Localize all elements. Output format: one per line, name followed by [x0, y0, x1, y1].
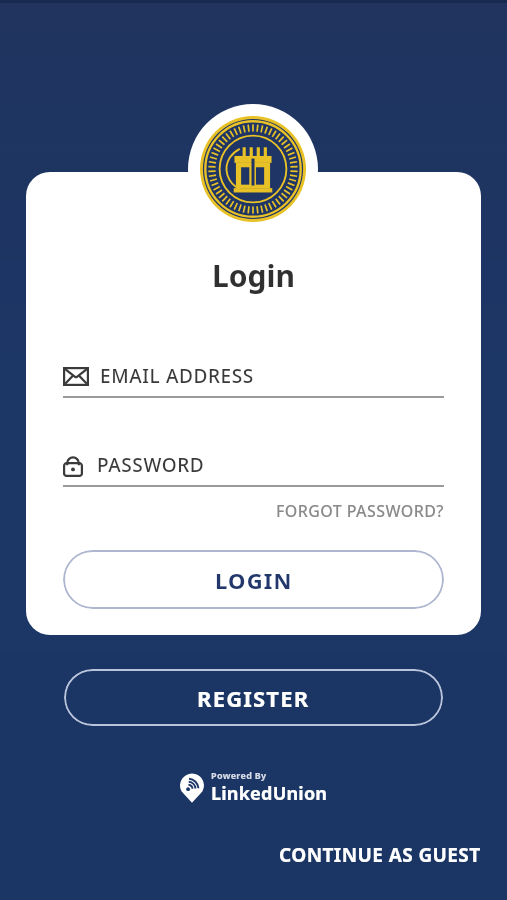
other: Email	[63, 367, 89, 386]
staticText: FORGOT PASSWORD?	[276, 500, 444, 522]
staticText: REGISTER	[197, 683, 310, 713]
button[interactable]: LOGIN	[63, 550, 444, 609]
staticText: Login	[212, 255, 295, 296]
other: IBEW Local Union seal	[200, 116, 306, 222]
button[interactable]: Email	[63, 359, 444, 393]
staticText: PASSWORD	[97, 452, 205, 478]
staticText: LinkedUnion	[211, 781, 328, 806]
button[interactable]: CONTINUE AS GUEST	[273, 836, 487, 874]
staticText: LOGIN	[215, 565, 293, 595]
staticText: CONTINUE AS GUEST	[279, 842, 481, 868]
button[interactable]: FORGOT PASSWORD?	[276, 496, 444, 526]
other: Password	[63, 454, 83, 477]
button[interactable]: Password	[63, 448, 444, 482]
button[interactable]: LinkedUnion	[175, 765, 332, 810]
button[interactable]: REGISTER	[64, 669, 443, 726]
other: LinkedUnion	[179, 773, 205, 803]
staticText: EMAIL ADDRESS	[100, 363, 254, 389]
staticText: Powered By	[211, 769, 267, 781]
